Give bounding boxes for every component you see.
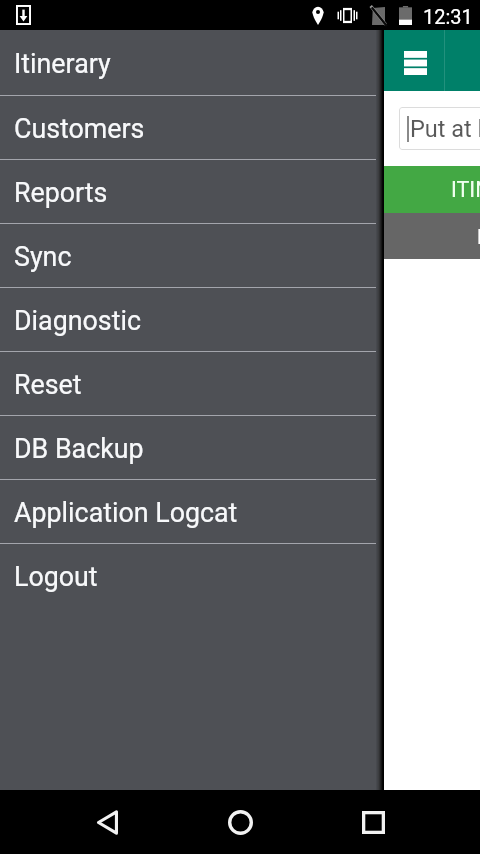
button[interactable]: Open navigation drawer — [386, 34, 440, 88]
staticText: No items — [477, 225, 480, 248]
staticText: Itinerary — [14, 48, 111, 79]
button[interactable]: Reports — [0, 160, 376, 224]
button[interactable]: Customers — [0, 96, 376, 160]
button[interactable]: Sync — [0, 224, 376, 288]
button[interactable]: Recents — [340, 790, 407, 854]
staticText: 12:31 — [423, 5, 473, 28]
staticText: Put at least 3 characters — [410, 115, 480, 143]
button[interactable]: Itinerary — [0, 30, 376, 96]
button[interactable]: Put at least 3 characters — [399, 107, 480, 150]
staticText: Reset — [14, 369, 82, 400]
button[interactable]: Home — [207, 790, 274, 854]
button[interactable]: Logout — [0, 544, 376, 608]
button[interactable]: ITINERARY — [0, 166, 480, 213]
staticText: Logout — [14, 561, 98, 592]
staticText: Customers — [14, 113, 145, 144]
button[interactable]: Diagnostic — [0, 288, 376, 352]
staticText: Reports — [14, 177, 108, 208]
button[interactable]: Back — [73, 790, 140, 854]
staticText: Sync — [14, 241, 72, 272]
button[interactable]: Application Logcat — [0, 480, 376, 544]
button[interactable]: DB Backup — [0, 416, 376, 480]
staticText: ITINERARY — [451, 177, 480, 202]
staticText: Diagnostic — [14, 305, 141, 336]
button[interactable]: Reset — [0, 352, 376, 416]
staticText: Application Logcat — [14, 497, 238, 528]
staticText: DB Backup — [14, 433, 144, 464]
